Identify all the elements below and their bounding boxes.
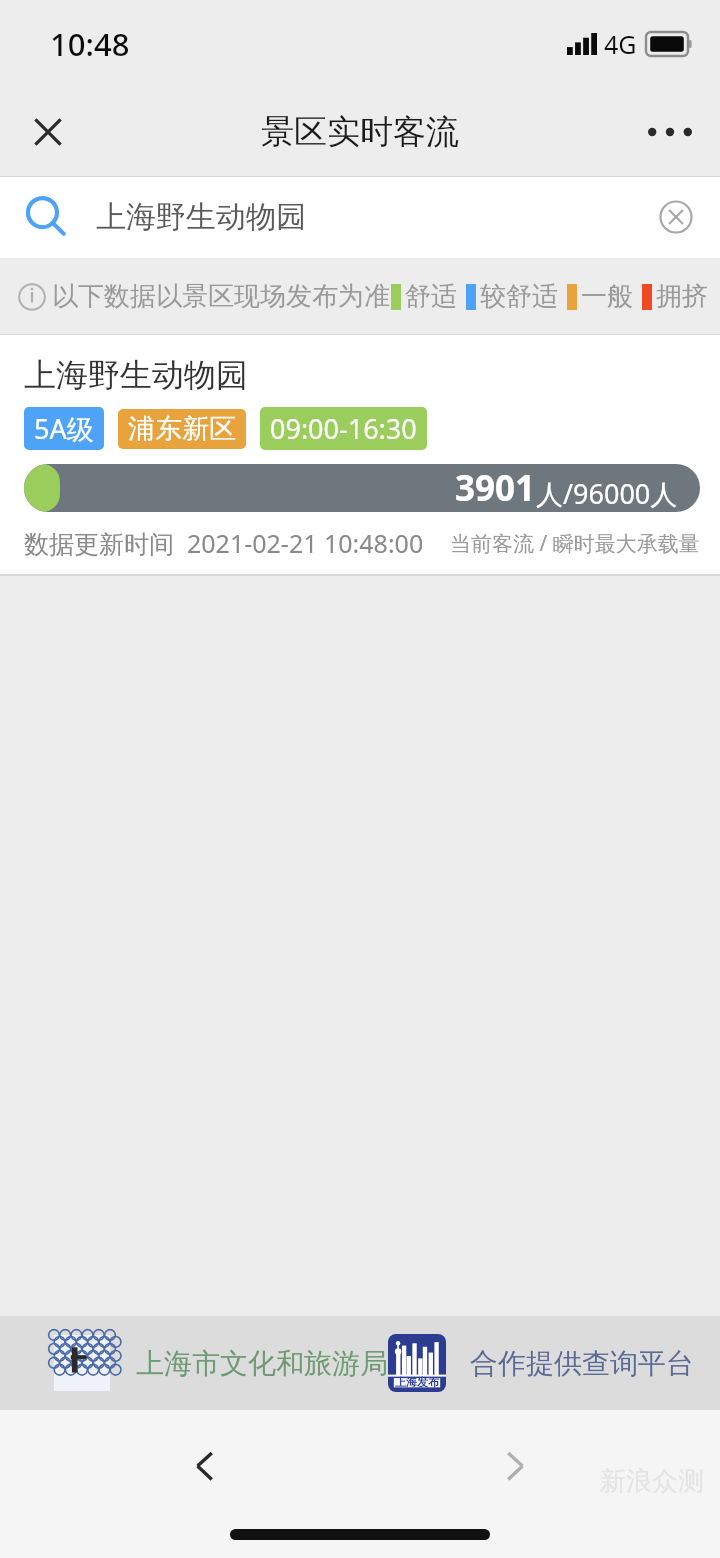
button[interactable]: 上海野生动物园	[0, 335, 720, 574]
staticText: 拥挤	[656, 280, 708, 313]
staticText: 上海野生动物园	[24, 355, 248, 395]
staticText: 合作提供查询平台	[470, 1346, 694, 1381]
button[interactable]: More options	[638, 100, 702, 164]
staticText: 新浪众测	[600, 1465, 704, 1498]
staticText: 3901	[455, 464, 536, 512]
staticText: 上海野生动物园	[96, 198, 306, 236]
staticText: 一般	[581, 280, 633, 313]
button[interactable]: Forward	[483, 1434, 547, 1498]
staticText: 较舒适	[480, 280, 558, 313]
staticText: 人/96000人	[536, 475, 678, 512]
button[interactable]: 上海野生动物园	[0, 176, 720, 258]
staticText: 上海市文化和旅游局	[136, 1346, 388, 1381]
staticText: 当前客流 / 瞬时最大承载量	[450, 529, 700, 558]
staticText: 4G	[604, 27, 637, 61]
staticText: 09:00-16:30	[270, 410, 417, 447]
staticText: 景区实时客流	[261, 111, 459, 153]
staticText: 上海发布	[395, 1375, 439, 1389]
staticText: 数据更新时间 2021-02-21 10:48:00	[24, 526, 424, 560]
staticText: 以下数据以景区现场发布为准	[52, 280, 390, 313]
staticText: 舒适	[405, 280, 457, 313]
button[interactable]: Clear	[650, 191, 702, 243]
staticText: 浦东新区	[128, 412, 236, 446]
staticText: 10:48	[50, 23, 130, 65]
button[interactable]: Back	[173, 1434, 237, 1498]
button[interactable]: Close	[16, 100, 80, 164]
staticText: 5A级	[34, 410, 94, 447]
